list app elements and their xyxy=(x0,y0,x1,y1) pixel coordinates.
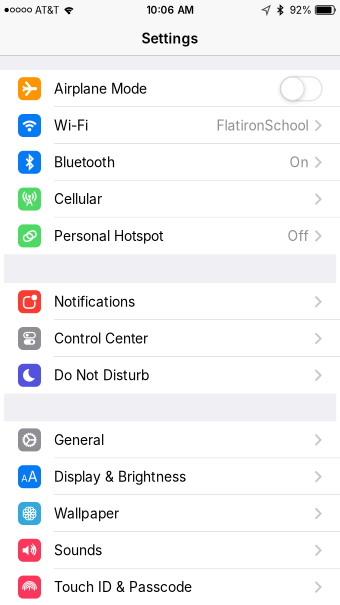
staticText: Notifications xyxy=(54,293,135,310)
button[interactable]: Control Center xyxy=(0,320,340,357)
staticText: 10:06 AM xyxy=(146,4,193,16)
staticText: Off xyxy=(287,228,308,244)
staticText: Control Center xyxy=(54,330,148,347)
button[interactable]: Do Not Disturb xyxy=(0,357,340,394)
button[interactable]: Touch ID & Passcode xyxy=(0,569,340,605)
staticText: On xyxy=(289,154,308,171)
staticText: Sounds xyxy=(54,542,102,559)
button[interactable]: Notifications xyxy=(0,283,340,320)
staticText: Touch ID & Passcode xyxy=(54,579,192,595)
button[interactable]: Airplane Mode xyxy=(280,77,322,101)
button[interactable]: Cellular xyxy=(0,181,340,217)
staticText: Cellular xyxy=(54,191,102,207)
staticText: Settings xyxy=(141,30,198,47)
button[interactable]: Airplane Mode xyxy=(0,70,340,107)
staticText: Wi-Fi xyxy=(54,117,88,134)
staticText: Do Not Disturb xyxy=(54,367,149,384)
staticText: FlatironSchool xyxy=(216,117,308,134)
staticText: General xyxy=(54,432,104,448)
staticText: Wallpaper xyxy=(54,505,119,522)
staticText: 92% xyxy=(290,4,312,16)
staticText: A xyxy=(28,468,38,485)
button[interactable]: A xyxy=(0,458,340,495)
button[interactable]: Sounds xyxy=(0,532,340,569)
staticText: AT&T xyxy=(35,4,59,16)
staticText: Airplane Mode xyxy=(54,80,147,97)
button[interactable]: Wi-Fi xyxy=(0,107,340,144)
staticText: Personal Hotspot xyxy=(54,228,164,244)
staticText: A xyxy=(21,473,27,484)
button[interactable]: Personal Hotspot xyxy=(0,217,340,254)
button[interactable]: Wallpaper xyxy=(0,495,340,532)
button[interactable]: Bluetooth xyxy=(0,144,340,181)
button[interactable]: General xyxy=(0,421,340,458)
staticText: Display & Brightness xyxy=(54,468,186,485)
staticText: Bluetooth xyxy=(54,154,115,171)
